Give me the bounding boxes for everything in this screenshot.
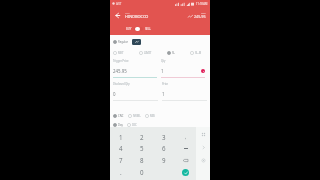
button[interactable]: SL-M xyxy=(190,51,202,55)
staticText: 1 xyxy=(119,133,123,141)
button[interactable]: Minus xyxy=(175,142,196,154)
button[interactable]: Buy Sell toggle xyxy=(134,27,143,31)
button[interactable]: 7 xyxy=(110,154,131,166)
button[interactable]: Day xyxy=(113,123,127,127)
staticText: Qty xyxy=(161,59,166,63)
button[interactable]: 5 xyxy=(131,142,153,154)
staticText: 9 xyxy=(162,156,166,164)
button[interactable]: MIS xyxy=(145,114,159,118)
staticText: 245.95 xyxy=(194,14,206,19)
staticText: MKT xyxy=(118,51,124,55)
button[interactable]: Next xyxy=(196,141,210,154)
staticText: 1 xyxy=(161,68,164,74)
button[interactable]: Qty xyxy=(161,59,205,78)
staticText: 11:18 AM xyxy=(196,2,208,6)
staticText: NSE xyxy=(125,11,130,14)
button[interactable]: 8 xyxy=(131,154,153,166)
button[interactable]: 2 xyxy=(131,131,153,142)
staticText: 245.95 xyxy=(113,68,127,74)
button[interactable]: 6 xyxy=(153,142,175,154)
button[interactable]: Comma xyxy=(175,131,196,142)
staticText: HINDBOCCO xyxy=(125,14,149,19)
staticText: Price xyxy=(162,82,169,86)
staticText: SELL xyxy=(145,27,152,31)
staticText: 2 xyxy=(140,133,144,141)
staticText: Day xyxy=(118,123,123,127)
button[interactable]: Back xyxy=(113,11,121,19)
staticText: ! xyxy=(203,70,204,73)
staticText: LIMIT xyxy=(144,51,152,55)
button[interactable]: NRML xyxy=(128,114,145,118)
button[interactable]: Disclosed Qty xyxy=(113,82,158,101)
staticText: CNC xyxy=(118,114,124,118)
staticText: , xyxy=(185,134,187,140)
staticText: 0 xyxy=(113,91,116,97)
button[interactable]: Regular xyxy=(113,40,128,44)
button[interactable]: Price xyxy=(162,82,207,101)
button[interactable]: Resize xyxy=(196,127,210,141)
button[interactable]: 9 xyxy=(153,154,175,166)
button[interactable]: Trigger Price xyxy=(113,59,157,78)
button[interactable]: Chart xyxy=(132,39,141,45)
button[interactable]: Enter xyxy=(182,169,189,176)
button[interactable]: MKT xyxy=(113,51,124,55)
button[interactable]: . xyxy=(110,166,131,178)
staticText: 1 xyxy=(162,91,165,97)
staticText: 7 xyxy=(119,156,123,164)
staticText: SL xyxy=(172,51,175,55)
staticText: 8 xyxy=(140,156,144,164)
staticText: 6 xyxy=(162,144,166,152)
staticText: 4:57 xyxy=(116,2,122,6)
button[interactable]: 1 xyxy=(110,131,131,142)
button[interactable]: IOC xyxy=(127,123,141,127)
staticText: 3 xyxy=(162,133,166,141)
button[interactable]: 0 xyxy=(131,166,153,178)
button[interactable]: LIMIT xyxy=(139,51,152,55)
staticText: BUY xyxy=(126,27,132,31)
staticText: Disclosed Qty xyxy=(113,82,130,86)
staticText: IOC xyxy=(132,123,137,127)
button[interactable]: 4 xyxy=(110,142,131,154)
staticText: NSE xyxy=(201,11,206,14)
staticText: 5 xyxy=(140,144,144,152)
staticText: Regular xyxy=(118,40,128,44)
staticText: 4 xyxy=(119,144,123,152)
staticText: MIS xyxy=(150,114,155,118)
staticText: . xyxy=(120,168,122,176)
staticText: Trigger Price xyxy=(113,59,129,63)
button[interactable]: CNC xyxy=(113,114,128,118)
button[interactable]: Backspace xyxy=(175,154,196,166)
button[interactable]: SL xyxy=(167,51,175,55)
staticText: SL-M xyxy=(195,51,202,55)
button[interactable]: Settings xyxy=(196,154,210,167)
button[interactable]: 3 xyxy=(153,131,175,142)
staticText: NRML xyxy=(133,114,141,118)
staticText: 0 xyxy=(140,168,144,176)
